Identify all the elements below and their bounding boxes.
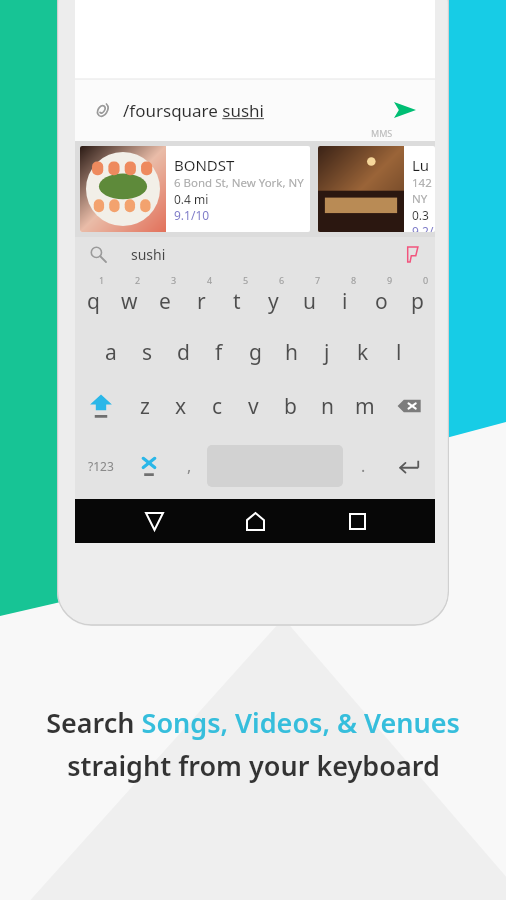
staticText: MMS [371,127,393,139]
staticText: sushi [131,245,166,264]
button[interactable]: g [237,325,273,379]
staticText: p [411,287,424,316]
staticText: b [284,392,297,421]
button[interactable]: f [201,325,237,379]
button[interactable]: BONDST [80,146,310,232]
staticText: ?123 [88,458,114,474]
button[interactable]: Search [87,243,109,265]
button[interactable]: Shift [75,379,127,433]
staticText: 3 [171,274,177,286]
staticText: i [342,287,348,316]
button[interactable]: 1 [75,271,111,325]
button[interactable]: d [165,325,201,379]
staticText: s [142,338,153,367]
button[interactable]: Emoji [127,433,171,499]
button[interactable]: Send [385,90,425,130]
staticText: z [140,392,150,421]
staticText: a [105,338,117,367]
staticText: NY [412,191,428,207]
button[interactable]: n [309,379,346,433]
staticText: BONDST [174,155,235,175]
button[interactable]: s [129,325,165,379]
button[interactable]: 4 [183,271,219,325]
button[interactable]: j [309,325,345,379]
staticText: 9 [387,274,393,286]
staticText: l [396,338,402,367]
staticText: n [321,392,334,421]
button[interactable]: Foursquare [401,243,423,265]
staticText: Search Songs, Videos, & Venues [46,704,460,741]
button[interactable]: k [345,325,381,379]
button[interactable]: Back [131,499,177,543]
button[interactable]: v [235,379,272,433]
staticText: o [375,287,388,316]
staticText: 0.3 mi [412,207,435,223]
button[interactable]: l [381,325,417,379]
staticText: , [187,455,192,477]
staticText: . [361,455,366,477]
button[interactable]: 3 [147,271,183,325]
staticText: q [87,287,100,316]
staticText: j [324,338,330,367]
staticText: w [121,287,138,316]
staticText: 9.1/10 [174,207,210,223]
button[interactable]: ?123 [75,433,127,499]
staticText: g [249,338,262,367]
button[interactable]: Recents [334,499,380,543]
staticText: f [215,338,223,367]
button[interactable]: h [273,325,309,379]
staticText: /foursquare sushi [123,99,264,122]
button[interactable]: m [346,379,383,433]
staticText: k [357,338,369,367]
staticText: 0 [423,274,429,286]
staticText: 0.4 mi [174,191,209,207]
staticText: 2 [135,274,141,286]
staticText: 4 [207,274,213,286]
button[interactable]: 8 [327,271,363,325]
staticText: c [212,392,223,421]
button[interactable]: Home [232,499,278,543]
button[interactable]: , [171,433,207,499]
staticText: 8 [351,274,357,286]
staticText: 6 Bond St, New York, NY [174,175,304,191]
staticText: x [175,392,187,421]
button[interactable]: 7 [291,271,327,325]
staticText: u [303,287,316,316]
button[interactable]: a [93,325,129,379]
button[interactable]: 5 [219,271,255,325]
button[interactable]: 0 [399,271,435,325]
staticText: e [159,287,171,316]
button[interactable]: 6 [255,271,291,325]
staticText: 7 [315,274,321,286]
staticText: h [285,338,298,367]
staticText: 5 [243,274,249,286]
button[interactable]: Lunch [318,146,435,232]
staticText: v [248,392,259,421]
button[interactable]: Attach [85,93,119,127]
staticText: 142 [412,175,432,191]
button[interactable]: 9 [363,271,399,325]
staticText: 1 [99,274,105,286]
staticText: d [177,338,190,367]
staticText: t [233,287,241,316]
staticText: straight from your keyboard [67,747,440,784]
staticText: Lunch [412,155,435,175]
button[interactable]: Backspace [383,379,435,433]
button[interactable]: c [199,379,235,433]
button[interactable]: b [272,379,309,433]
staticText: y [268,287,279,316]
button[interactable]: Enter [383,433,435,499]
button[interactable]: x [163,379,199,433]
staticText: m [355,392,375,421]
staticText: 6 [279,274,285,286]
button[interactable]: z [127,379,163,433]
staticText: r [197,287,206,316]
button[interactable]: 2 [111,271,147,325]
staticText: 9.2/10 [412,223,435,232]
